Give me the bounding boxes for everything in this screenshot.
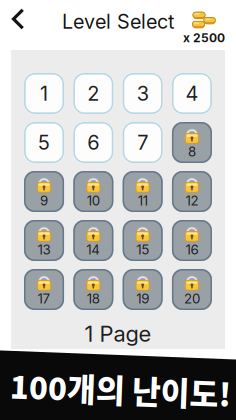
button[interactable]: 15 bbox=[123, 220, 163, 261]
button[interactable]: 4 bbox=[172, 73, 212, 114]
button[interactable]: Back bbox=[3, 4, 33, 34]
staticText: 12 bbox=[185, 193, 198, 209]
staticText: 100개의 난이도! bbox=[9, 366, 230, 412]
button[interactable]: 5 bbox=[24, 122, 64, 163]
button[interactable]: 1 bbox=[24, 73, 64, 114]
staticText: 3 bbox=[137, 81, 149, 106]
staticText: 10 bbox=[87, 193, 100, 209]
button[interactable]: 20 bbox=[172, 269, 212, 310]
staticText: 8 bbox=[188, 144, 196, 160]
staticText: 2 bbox=[87, 81, 99, 106]
staticText: 17 bbox=[37, 291, 50, 307]
staticText: 1 Page bbox=[84, 320, 151, 347]
staticText: 13 bbox=[37, 242, 50, 258]
staticText: 5 bbox=[38, 130, 50, 155]
button[interactable]: 3 bbox=[123, 73, 163, 114]
staticText: 20 bbox=[184, 291, 200, 307]
staticText: Level Select bbox=[62, 10, 174, 33]
button[interactable]: 6 bbox=[73, 122, 113, 163]
button[interactable]: 19 bbox=[123, 269, 163, 310]
staticText: x 2500 bbox=[183, 31, 225, 45]
staticText: 14 bbox=[86, 242, 100, 258]
staticText: 11 bbox=[138, 193, 148, 209]
button[interactable]: 16 bbox=[172, 220, 212, 261]
button[interactable]: 11 bbox=[123, 171, 163, 212]
button[interactable]: 18 bbox=[73, 269, 113, 310]
button[interactable]: Coins: 2500 bbox=[181, 12, 227, 45]
button[interactable]: 2 bbox=[73, 73, 113, 114]
button[interactable]: 14 bbox=[73, 220, 113, 261]
button[interactable]: 7 bbox=[123, 122, 163, 163]
staticText: 15 bbox=[136, 242, 149, 258]
button[interactable]: 13 bbox=[24, 220, 64, 261]
button[interactable]: 17 bbox=[24, 269, 64, 310]
staticText: 4 bbox=[185, 81, 198, 106]
staticText: 19 bbox=[136, 291, 149, 307]
button[interactable]: 9 bbox=[24, 171, 64, 212]
staticText: 1 bbox=[40, 81, 48, 106]
staticText: 7 bbox=[137, 130, 148, 155]
staticText: 16 bbox=[185, 242, 198, 258]
staticText: 18 bbox=[87, 291, 100, 307]
button[interactable]: 12 bbox=[172, 171, 212, 212]
staticText: 9 bbox=[40, 193, 48, 209]
button[interactable]: 10 bbox=[73, 171, 113, 212]
staticText: 6 bbox=[87, 130, 99, 155]
button[interactable]: 8 bbox=[172, 122, 212, 163]
